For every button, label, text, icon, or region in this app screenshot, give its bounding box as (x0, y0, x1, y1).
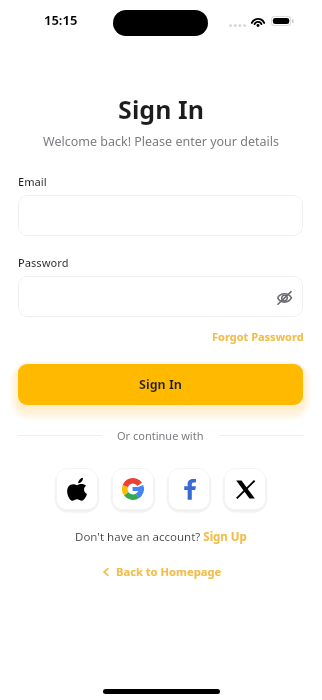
button[interactable]: Sign in with Apple (56, 468, 98, 510)
button[interactable] (18, 195, 303, 236)
staticText: Back to Homepage (116, 564, 222, 579)
button[interactable]: Forgot Password (212, 329, 304, 344)
staticText: Password (18, 255, 69, 270)
button[interactable]: Sign In (18, 364, 303, 405)
button[interactable]: Show password (273, 286, 295, 308)
button[interactable]: Don't have an account? Sign Up (75, 529, 247, 545)
button[interactable]: Sign in with Google (112, 468, 154, 510)
staticText: 15:15 (44, 11, 78, 29)
staticText: Sign In (139, 376, 182, 393)
button[interactable]: Sign in with X (224, 468, 266, 510)
button[interactable]: Sign in with Facebook (168, 468, 210, 510)
staticText: Email (18, 174, 47, 189)
button[interactable]: Show password (18, 276, 303, 317)
staticText: Welcome back! Please enter your details (0, 133, 322, 150)
staticText: Sign In (0, 92, 322, 126)
staticText: Or continue with (117, 428, 204, 443)
button[interactable]: Back to Homepage (0, 564, 322, 579)
